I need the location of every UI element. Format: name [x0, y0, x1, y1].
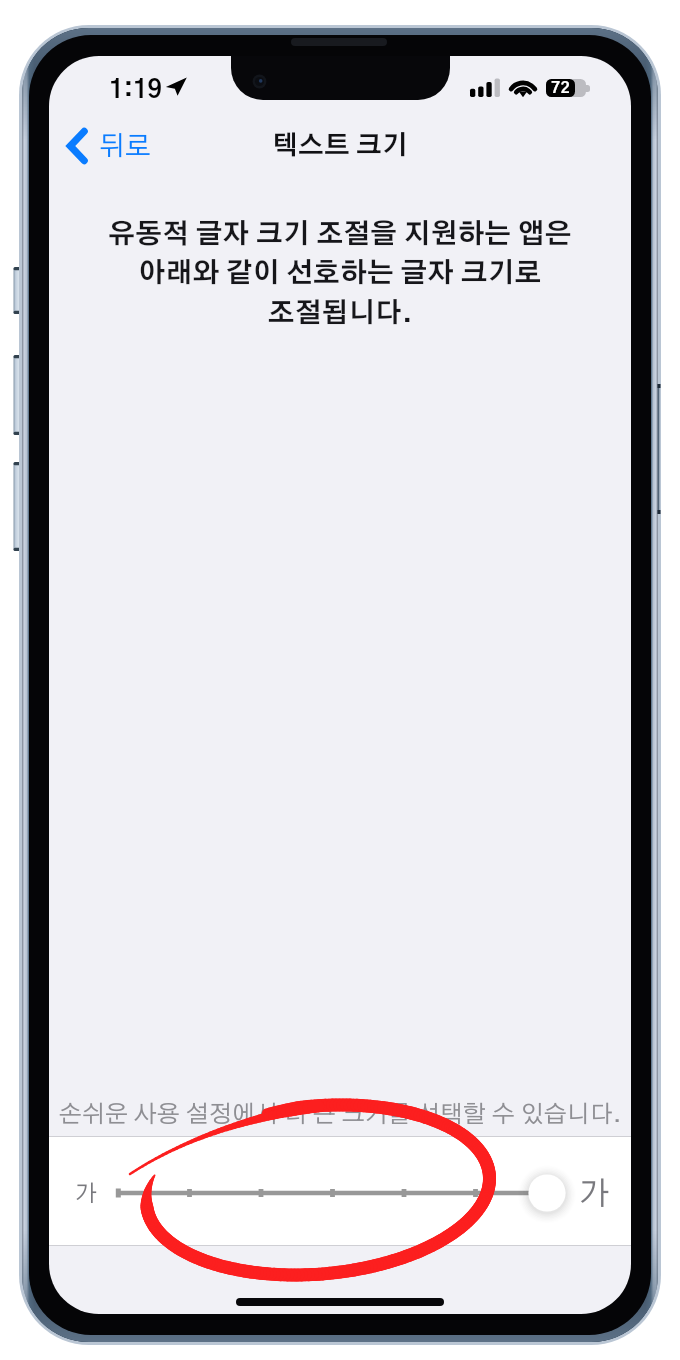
staticText: 손쉬운 사용 설정에서 더 큰 크기를 선택할 수 있습니다. [49, 1103, 631, 1127]
staticText: 가 [579, 1178, 610, 1210]
staticText: 뒤로 [99, 133, 151, 160]
button[interactable]: Text size slider [49, 1137, 631, 1245]
staticText: 텍스트 크기 [49, 133, 631, 159]
button[interactable]: 뒤로 [65, 122, 151, 170]
staticText: 유동적 글자 크기 조절을 지원하는 앱은 아래와 같이 선호하는 글자 크기로… [49, 221, 631, 328]
staticText: 72 [551, 80, 570, 96]
staticText: 가 [75, 1183, 98, 1206]
staticText: 1:19 [109, 78, 163, 103]
